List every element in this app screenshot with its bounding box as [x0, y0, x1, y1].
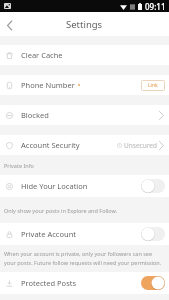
button[interactable]: Phone Number	[0, 75, 169, 95]
staticText: Private Info	[4, 162, 34, 169]
staticText: Phone Number	[21, 80, 75, 90]
staticText: Blocked	[21, 110, 49, 120]
button[interactable]: On	[141, 276, 165, 290]
button[interactable]: Back	[0, 14, 19, 36]
staticText: Account Security	[21, 140, 80, 150]
button[interactable]: Off	[141, 227, 165, 241]
staticText: Unsecured	[124, 141, 157, 150]
button[interactable]: Hide Your Location	[0, 175, 169, 197]
staticText: Link	[148, 82, 158, 89]
button[interactable]: Clear Cache	[0, 45, 169, 65]
staticText: When your account is private, only your …	[4, 250, 165, 267]
staticText: Private Account	[21, 229, 76, 239]
staticText: Hide Your Location	[21, 181, 88, 191]
button[interactable]: Off	[141, 179, 165, 193]
staticText: Clear Cache	[21, 50, 63, 60]
staticText: Settings	[66, 18, 103, 31]
button[interactable]: Private Account	[0, 223, 169, 245]
button[interactable]: Account Security	[0, 135, 169, 155]
staticText: 09:11	[145, 1, 166, 12]
staticText: Protected Posts	[21, 278, 77, 288]
staticText: Only show your posts in Explore and Foll…	[4, 207, 118, 214]
button[interactable]: Protected Posts	[0, 272, 169, 294]
button[interactable]: Link	[141, 80, 165, 91]
button[interactable]: Blocked	[0, 105, 169, 125]
